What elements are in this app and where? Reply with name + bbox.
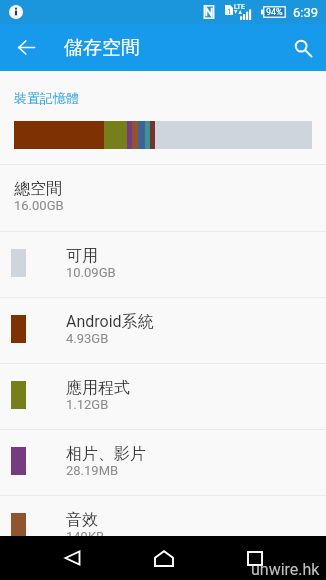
staticText: 總空間 — [14, 179, 62, 199]
staticText: 1.12GB — [66, 397, 109, 412]
button[interactable]: Back — [36, 536, 108, 580]
staticText: 可用 — [66, 246, 98, 266]
staticText: LTE — [234, 3, 245, 11]
button[interactable]: Android系統 — [0, 298, 326, 363]
staticText: 裝置記憶體 — [14, 90, 79, 106]
staticText: 149KB — [66, 529, 105, 544]
staticText: unwire.hk — [251, 560, 320, 579]
staticText: 94% — [266, 7, 283, 18]
staticText: 相片、影片 — [66, 444, 146, 464]
staticText: 28.19MB — [66, 463, 119, 478]
button[interactable]: 相片、影片 — [0, 430, 326, 495]
staticText: 4.93GB — [66, 331, 109, 346]
staticText: Android系統 — [66, 312, 154, 332]
button[interactable]: Home — [128, 536, 200, 580]
staticText: 6:39 — [293, 5, 319, 20]
button[interactable]: Recent apps — [219, 536, 291, 580]
button[interactable]: 應用程式 — [0, 364, 326, 429]
button[interactable]: 可用 — [0, 232, 326, 297]
staticText: 1 — [227, 7, 232, 16]
staticText: 16.00GB — [14, 198, 64, 213]
button[interactable]: Search — [280, 25, 326, 72]
button[interactable]: 音效 — [0, 496, 326, 561]
staticText: 應用程式 — [66, 378, 130, 398]
staticText: 儲存空間 — [64, 36, 140, 60]
staticText: 10.09GB — [66, 265, 116, 280]
staticText: 音效 — [66, 510, 98, 530]
button[interactable]: 總空間 — [0, 165, 326, 231]
button[interactable]: Back — [3, 24, 50, 71]
